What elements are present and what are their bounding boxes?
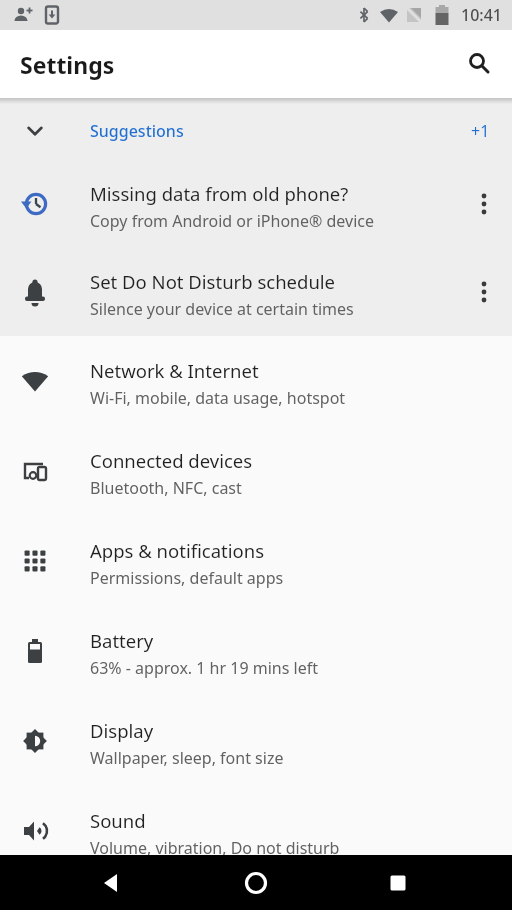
button[interactable]: Network & Internet xyxy=(0,336,512,426)
staticText: Permissions, default apps xyxy=(90,567,284,589)
button[interactable]: Suggestions xyxy=(0,102,512,160)
staticText: Volume, vibration, Do not disturb xyxy=(90,837,340,859)
staticText: Silence your device at certain times xyxy=(90,298,354,320)
staticText: Connected devices xyxy=(90,448,253,473)
staticText: Network & Internet xyxy=(90,358,259,383)
staticText: Copy from Android or iPhone® device xyxy=(90,210,374,232)
staticText: Sound xyxy=(90,808,146,833)
staticText: Suggestions xyxy=(90,120,471,142)
button[interactable] xyxy=(84,855,140,910)
staticText: Missing data from old phone? xyxy=(90,181,349,206)
button[interactable] xyxy=(458,42,502,86)
staticText: Wi-Fi, mobile, data usage, hotspot xyxy=(90,387,346,409)
button[interactable] xyxy=(228,855,284,910)
button[interactable] xyxy=(370,855,426,910)
button[interactable]: Connected devices xyxy=(0,426,512,516)
staticText: Display xyxy=(90,718,154,743)
staticText: Settings xyxy=(20,49,115,80)
button[interactable]: Apps & notifications xyxy=(0,516,512,606)
staticText: 63% - approx. 1 hr 19 mins left xyxy=(90,657,318,679)
button[interactable]: Sound xyxy=(0,786,512,876)
button[interactable]: Battery xyxy=(0,606,512,696)
staticText: Battery xyxy=(90,628,154,653)
staticText: +1 xyxy=(471,120,490,142)
button[interactable]: Missing data from old phone? xyxy=(0,160,512,248)
button[interactable]: Display xyxy=(0,696,512,786)
staticText: Set Do Not Disturb schedule xyxy=(90,269,336,294)
staticText: Apps & notifications xyxy=(90,538,265,563)
staticText: Bluetooth, NFC, cast xyxy=(90,477,242,499)
button[interactable]: Set Do Not Disturb schedule xyxy=(0,248,512,336)
staticText: 10:41 xyxy=(461,4,502,26)
button[interactable] xyxy=(456,160,512,248)
button[interactable] xyxy=(456,248,512,336)
staticText: Wallpaper, sleep, font size xyxy=(90,747,284,769)
